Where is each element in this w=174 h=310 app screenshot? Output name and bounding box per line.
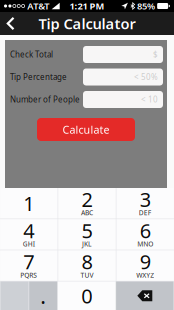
staticText: < 10	[141, 94, 158, 105]
staticText: 0	[81, 282, 92, 309]
staticText: TUV	[80, 271, 93, 279]
staticText: 7	[23, 248, 34, 275]
staticText: ABC	[81, 208, 93, 217]
staticText: 6	[140, 217, 151, 244]
staticText: < 50%	[134, 72, 158, 82]
staticText: .	[40, 282, 46, 310]
button[interactable]: 0	[58, 281, 115, 310]
staticText: 2	[81, 186, 92, 213]
staticText: 85%	[137, 0, 155, 12]
staticText: JKL	[82, 239, 92, 248]
button[interactable]: Back	[0, 13, 23, 34]
staticText: GHI	[23, 239, 35, 248]
staticText: MNO	[137, 239, 153, 248]
staticText: Tip Calculator	[38, 14, 135, 33]
staticText: AT&T	[27, 0, 49, 12]
staticText: Check Total	[10, 49, 53, 60]
button[interactable]: Delete	[116, 281, 173, 310]
button[interactable]: 3	[116, 188, 174, 218]
button[interactable]: 2	[58, 188, 116, 218]
button[interactable]: Decimal point	[29, 281, 57, 310]
staticText: 1:21 PM	[69, 0, 104, 12]
button[interactable]: Calculate	[37, 108, 135, 141]
staticText: 5	[81, 217, 92, 244]
staticText: 9	[140, 248, 151, 275]
button[interactable]: 6	[116, 219, 174, 250]
button[interactable]: 4	[0, 219, 57, 250]
staticText: PQRS	[20, 271, 37, 279]
staticText: 8	[81, 248, 92, 275]
staticText: Number of People	[10, 94, 80, 105]
staticText: 4	[23, 217, 34, 244]
staticText: DEF	[139, 208, 152, 217]
staticText: Calculate	[62, 122, 109, 137]
button[interactable]: 7	[0, 250, 57, 281]
button[interactable]: 8	[58, 250, 116, 281]
button[interactable]: 9	[116, 250, 174, 281]
button[interactable]: 1	[0, 188, 57, 218]
staticText: Tip Percentage	[10, 72, 67, 82]
staticText: $	[153, 49, 158, 60]
staticText: 3	[140, 186, 151, 213]
staticText: WXYZ	[136, 271, 154, 279]
button[interactable]: 5	[58, 219, 116, 250]
staticText: 1	[23, 190, 34, 217]
